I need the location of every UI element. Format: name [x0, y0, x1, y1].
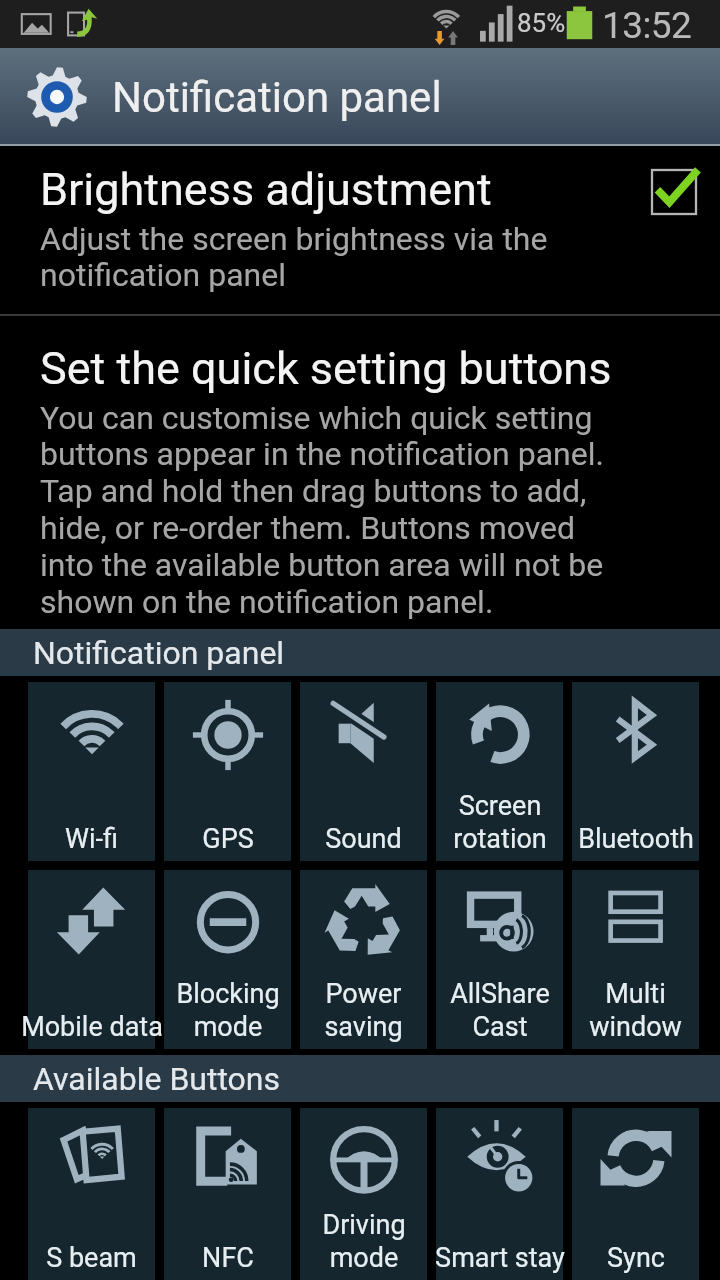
- staticText: Adjust the screen brightness via the not…: [40, 220, 628, 294]
- button[interactable]: Brightness adjustment: [0, 146, 720, 314]
- staticText: You can customise which quick setting bu…: [40, 399, 604, 621]
- button[interactable]: NFC: [164, 1108, 291, 1280]
- staticText: Brightness adjustment: [40, 163, 492, 216]
- staticText: S beam: [46, 1242, 137, 1274]
- staticText: Available Buttons: [33, 1060, 281, 1098]
- button[interactable]: Mobile data: [28, 870, 155, 1049]
- button[interactable]: Blocking mode: [164, 870, 291, 1049]
- button[interactable]: Bluetooth: [572, 682, 699, 861]
- staticText: 13:52: [602, 4, 692, 47]
- staticText: Driving mode: [322, 1209, 406, 1274]
- staticText: Notification panel: [33, 634, 285, 672]
- staticText: Smart stay: [435, 1242, 565, 1274]
- button[interactable]: Set the quick setting buttons: [0, 316, 720, 621]
- button[interactable]: Screen rotation: [436, 682, 563, 861]
- button[interactable]: S beam: [28, 1108, 155, 1280]
- staticText: Mobile data: [21, 1011, 163, 1043]
- staticText: Screen rotation: [453, 790, 547, 855]
- button[interactable]: Sync: [572, 1108, 699, 1280]
- button[interactable]: AllShare Cast: [436, 870, 563, 1049]
- staticText: Notification panel: [112, 73, 442, 122]
- button[interactable]: GPS: [164, 682, 291, 861]
- staticText: Bluetooth: [578, 823, 694, 855]
- staticText: Multi window: [589, 978, 682, 1043]
- button[interactable]: Wi-fi: [28, 682, 155, 861]
- button[interactable]: Multi window: [572, 870, 699, 1049]
- staticText: Set the quick setting buttons: [40, 342, 612, 395]
- staticText: Power saving: [324, 978, 403, 1043]
- button[interactable]: Sound: [300, 682, 427, 861]
- staticText: Sync: [607, 1242, 665, 1274]
- button[interactable]: Power saving: [300, 870, 427, 1049]
- staticText: Wi-fi: [65, 823, 118, 855]
- staticText: Sound: [325, 823, 402, 855]
- button[interactable]: Smart stay: [436, 1108, 563, 1280]
- staticText: Blocking mode: [176, 978, 280, 1043]
- staticText: AllShare Cast: [450, 978, 550, 1043]
- staticText: GPS: [202, 823, 254, 855]
- button[interactable]: Driving mode: [300, 1108, 427, 1280]
- staticText: NFC: [202, 1242, 254, 1274]
- staticText: 85%: [517, 8, 566, 38]
